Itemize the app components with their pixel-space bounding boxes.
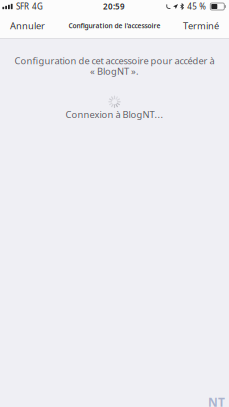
staticText: Terminé [183,20,219,32]
staticText: Annuler [10,20,45,32]
staticText: Configuration de cet accessoire pour acc… [14,54,214,67]
staticText: « BlogNT ». [90,65,139,77]
staticText: Connexion à BlogNT... [65,108,163,121]
staticText: SFR [16,1,29,12]
staticText: 4G [32,1,43,12]
button[interactable]: Annuler [0,15,55,37]
button[interactable]: Terminé [173,15,229,37]
staticText: NT [208,394,225,407]
staticText: 45 % [187,1,206,12]
staticText: Configuration de l'accessoire [68,21,160,30]
staticText: 20:59 [103,1,125,12]
